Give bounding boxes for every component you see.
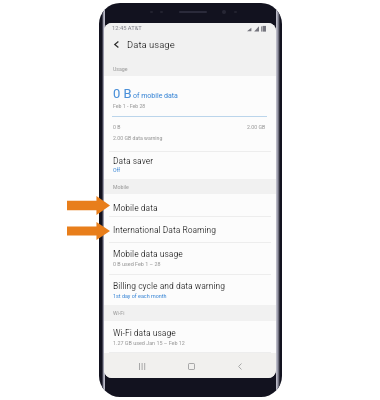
staticText: 2.00 GB [247, 124, 266, 130]
staticText: International Data Roaming [113, 225, 217, 235]
staticText: Data usage [127, 39, 175, 50]
button[interactable] [104, 275, 276, 305]
staticText: 0 B [113, 86, 132, 101]
staticText: 0 B [113, 124, 121, 130]
staticText: Wi-Fi data usage [113, 328, 176, 338]
staticText: Data saver [113, 156, 154, 166]
button[interactable] [104, 243, 276, 274]
staticText: Off [113, 167, 121, 173]
button[interactable] [104, 217, 276, 242]
staticText: Mobile [113, 184, 129, 190]
button[interactable] [104, 36, 276, 58]
button[interactable]: Recent apps [132, 356, 152, 376]
staticText: Wi-Fi [113, 310, 125, 316]
button[interactable]: Back [230, 356, 250, 376]
staticText: 1st day of each month [113, 293, 167, 299]
staticText: Usage [113, 66, 128, 72]
staticText: 12:45 AT&T [112, 25, 142, 32]
staticText: 0 B used Feb 1 – 28 [113, 261, 161, 267]
staticText: Feb 1 - Feb 28 [113, 103, 146, 109]
button[interactable]: Back [106, 34, 127, 55]
staticText: 1.27 GB used Jan 15 – Feb 12 [113, 340, 185, 346]
button[interactable] [104, 152, 276, 179]
staticText: of mobile data [133, 92, 178, 100]
staticText: 2.00 GB data warning [113, 135, 163, 141]
staticText: Mobile data [113, 203, 158, 213]
button[interactable] [104, 321, 276, 352]
button[interactable]: Home [181, 356, 201, 376]
staticText: Billing cycle and data warning [113, 281, 225, 291]
staticText: Mobile data usage [113, 249, 183, 259]
button[interactable] [104, 194, 276, 216]
